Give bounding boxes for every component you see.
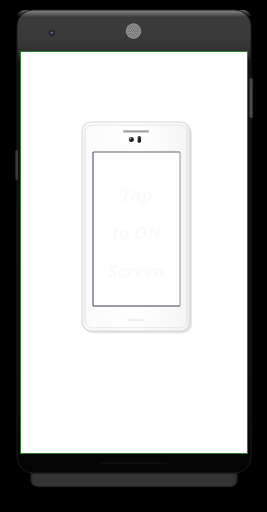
- button[interactable]: Tap to ON Screen: [0, 0, 267, 512]
